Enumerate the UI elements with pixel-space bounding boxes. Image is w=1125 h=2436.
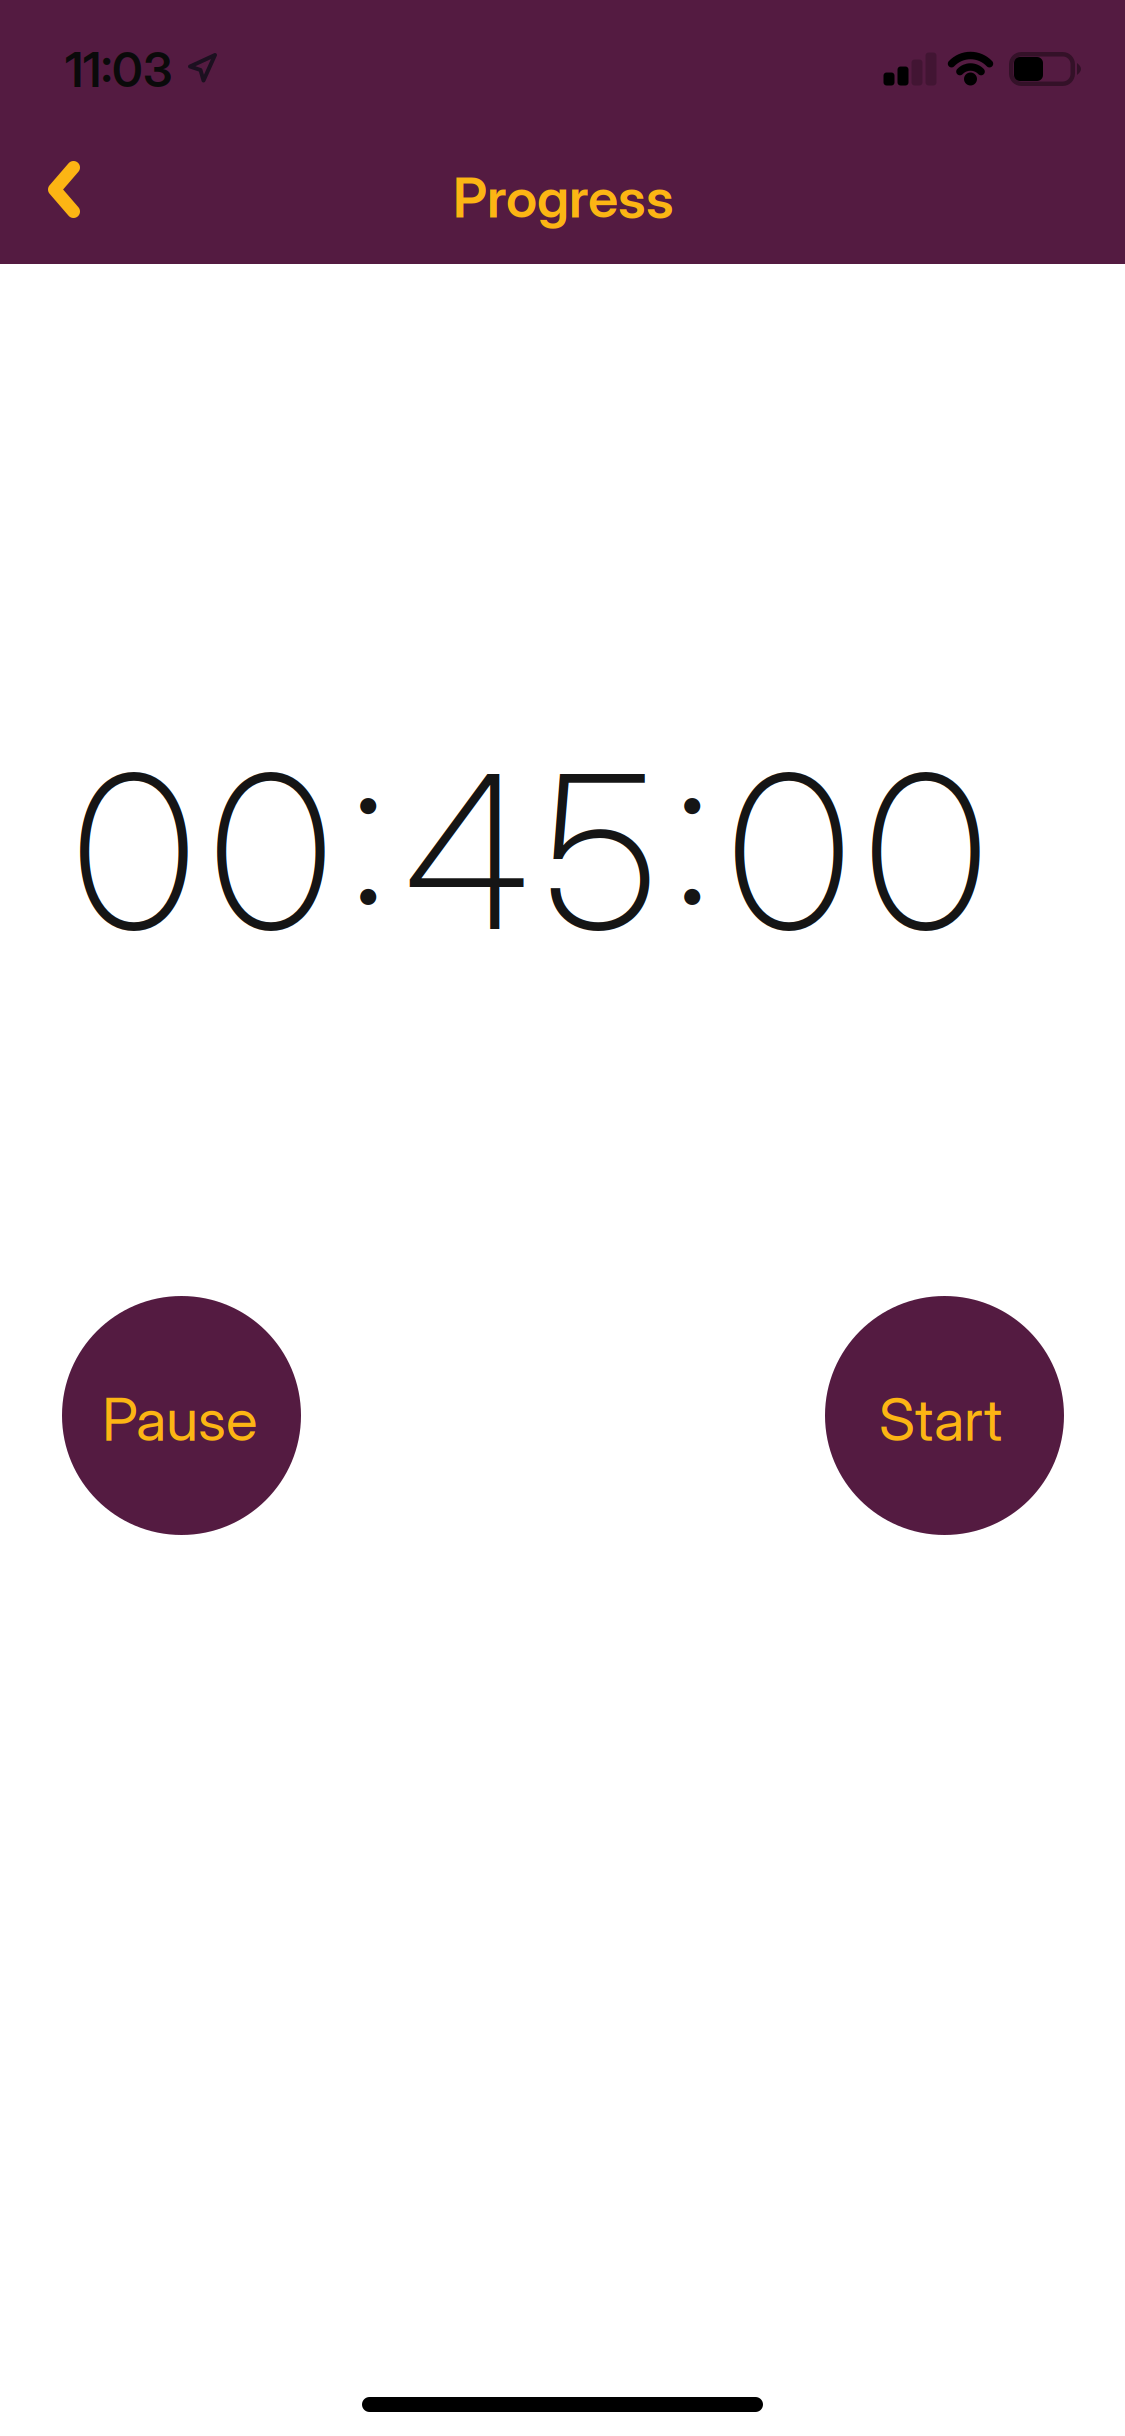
button[interactable]: Pause xyxy=(62,1296,301,1535)
button[interactable]: Start xyxy=(825,1296,1064,1535)
staticText: Pause xyxy=(102,1384,257,1455)
button[interactable]: Back xyxy=(32,149,96,230)
staticText: 00:45:00 xyxy=(72,722,987,980)
staticText: 11:03 xyxy=(65,40,172,99)
staticText: Start xyxy=(879,1384,1002,1455)
staticText: Progress xyxy=(453,164,674,230)
